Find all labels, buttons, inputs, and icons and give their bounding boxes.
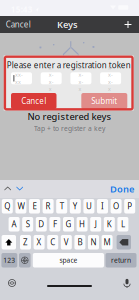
staticText: A	[12, 219, 17, 229]
button[interactable]: P	[124, 199, 135, 213]
button[interactable]: N	[88, 235, 99, 249]
button[interactable]: Z	[20, 235, 31, 249]
button[interactable]: Q	[2, 199, 13, 213]
staticText: G	[65, 219, 71, 229]
button[interactable]: X	[34, 235, 45, 249]
staticText: xxxx	[78, 64, 83, 92]
button[interactable]: F	[49, 217, 60, 231]
button[interactable]: S	[22, 217, 33, 231]
button[interactable]: I	[97, 199, 108, 213]
staticText: Keys	[57, 18, 78, 31]
button[interactable]: Done	[110, 183, 139, 195]
staticText: xxxx	[15, 71, 23, 85]
staticText: Tap + to register a key	[34, 124, 105, 133]
button[interactable]: J	[90, 217, 101, 231]
button[interactable]: T	[56, 199, 67, 213]
button[interactable]: Change keyboard	[4, 275, 20, 291]
staticText: S	[26, 219, 30, 229]
staticText: U	[86, 201, 92, 211]
staticText: X	[37, 237, 42, 247]
staticText: I	[101, 201, 104, 211]
button[interactable]: Y	[70, 199, 81, 213]
staticText: J	[95, 219, 97, 229]
button[interactable]: Cancel	[0, 16, 36, 33]
button[interactable]: Delete	[117, 235, 131, 249]
button[interactable]: R	[43, 199, 54, 213]
button[interactable]: A	[9, 217, 20, 231]
button[interactable]: K	[104, 217, 115, 231]
staticText: N	[90, 237, 96, 247]
button[interactable]: M	[102, 235, 113, 249]
staticText: space	[59, 256, 77, 265]
staticText: O	[113, 201, 119, 211]
staticText: xxxx	[108, 64, 113, 92]
staticText: Y	[73, 201, 78, 211]
button[interactable]: space	[33, 253, 104, 267]
staticText: Submit	[91, 96, 117, 106]
staticText: Please enter a registration token	[7, 60, 131, 70]
staticText: L	[121, 219, 125, 229]
staticText: V	[64, 237, 69, 247]
staticText: T	[60, 201, 64, 211]
button[interactable]: G	[63, 217, 74, 231]
staticText: M	[104, 237, 111, 247]
button[interactable]: H	[77, 217, 88, 231]
staticText: Cancel	[6, 19, 31, 30]
staticText: K	[107, 219, 112, 229]
staticText: C	[50, 237, 55, 247]
staticText: E	[32, 201, 36, 211]
staticText: R	[46, 201, 51, 211]
button[interactable]: return	[105, 253, 136, 267]
button[interactable]: Add key	[120, 16, 135, 33]
button[interactable]: O	[111, 199, 122, 213]
staticText: Cancel	[21, 96, 46, 106]
button[interactable]: Submit	[81, 93, 127, 109]
button[interactable]: U	[83, 199, 94, 213]
button[interactable]: V	[61, 235, 72, 249]
staticText: B	[77, 237, 82, 247]
button[interactable]: E	[29, 199, 40, 213]
button[interactable]: B	[74, 235, 85, 249]
button[interactable]: Next field	[14, 180, 26, 198]
button[interactable]: Shift	[2, 235, 16, 249]
staticText: xxxx	[49, 64, 54, 92]
staticText: Z	[23, 237, 28, 247]
staticText: F	[53, 219, 57, 229]
staticText: 123	[3, 256, 15, 265]
staticText: D	[38, 219, 44, 229]
staticText: P	[127, 201, 132, 211]
staticText: No registered keys	[27, 110, 111, 123]
button[interactable]: Emoji	[19, 253, 31, 267]
staticText: W	[17, 201, 24, 211]
button[interactable]: Previous field	[2, 180, 14, 198]
staticText: Q	[4, 201, 10, 211]
button[interactable]: L	[117, 217, 128, 231]
button[interactable]: W	[15, 199, 26, 213]
button[interactable]: Dictation	[119, 275, 135, 291]
staticText: return	[111, 256, 131, 265]
button[interactable]: 123	[1, 253, 17, 267]
button[interactable]: D	[36, 217, 47, 231]
staticText: H	[79, 219, 85, 229]
button[interactable]: Cancel	[11, 93, 56, 109]
button[interactable]: C	[47, 235, 58, 249]
staticText: Done	[110, 183, 134, 195]
